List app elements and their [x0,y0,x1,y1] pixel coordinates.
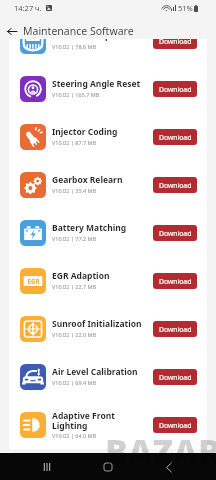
button[interactable]: Throttle Adaption [9,17,207,65]
button[interactable]: Battery Matching [9,209,207,257]
staticText: V10.02 | 87.7 MB [52,139,97,146]
staticText: Download [159,85,192,94]
staticText: V10.02 | 64.0 MB [52,432,97,439]
button[interactable]: Steering Angle Reset [9,65,207,113]
staticText: V10.02 | 78.6 MB [52,43,97,50]
button[interactable]: Download [153,177,197,193]
button[interactable]: Download [153,417,197,433]
button[interactable]: Download [153,369,197,385]
staticText: Download [159,133,192,142]
staticText: V10.02 | 22.7 MB [52,283,97,290]
staticText: Download [159,277,192,286]
staticText: 51% [178,3,193,13]
button[interactable]: Download [153,273,197,289]
staticText: Download [159,181,192,190]
staticText: Sunroof Initialization [52,318,142,330]
button[interactable]: Adaptive Front Lighting [9,401,207,449]
button[interactable]: Sunroof Initialization [9,305,207,353]
button[interactable]: Injector Coding [9,113,207,161]
staticText: V10.02 | 22.0 MB [52,331,97,338]
button[interactable]: Download [153,225,197,241]
staticText: Steering Angle Reset [52,78,141,90]
staticText: Download [159,37,192,46]
staticText: EGR Adaption [52,270,110,282]
staticText: Throttle Adaption [52,30,128,42]
button[interactable]: Back [0,21,23,41]
staticText: V10.02 | 35.4 MB [52,187,97,194]
staticText: 14:27 ч. [14,3,42,13]
staticText: Air Level Calibration [52,366,138,378]
button[interactable]: Home [99,458,117,476]
staticText: EGR [27,277,40,285]
staticText: Adaptive Front Lighting [52,410,115,431]
button[interactable]: Download [153,33,197,49]
button[interactable]: Download [153,129,197,145]
button[interactable]: Back [160,458,178,476]
staticText: BAZAR [105,428,216,474]
staticText: Injector Coding [52,126,118,138]
button[interactable]: Recent apps [38,458,56,476]
button[interactable]: Air Level Calibration [9,353,207,401]
staticText: Gearbox Relearn [52,174,123,186]
staticText: Battery Matching [52,222,127,234]
staticText: V10.02 | 165.7 MB [52,91,100,98]
staticText: Download [159,325,192,334]
staticText: Download [159,421,192,430]
staticText: Maintenance Software [23,24,134,38]
button[interactable]: EGR [9,257,207,305]
staticText: Download [159,373,192,382]
staticText: Download [159,229,192,238]
staticText: V10.02 | 69.4 MB [52,379,97,386]
staticText: V10.02 | 77.2 MB [52,235,97,242]
button[interactable]: Download [153,81,197,97]
button[interactable]: Gearbox Relearn [9,161,207,209]
button[interactable]: Download [153,321,197,337]
